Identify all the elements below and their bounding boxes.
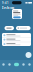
staticText: Inbox — [2, 5, 14, 10]
staticText: 9:41 — [2, 1, 9, 5]
